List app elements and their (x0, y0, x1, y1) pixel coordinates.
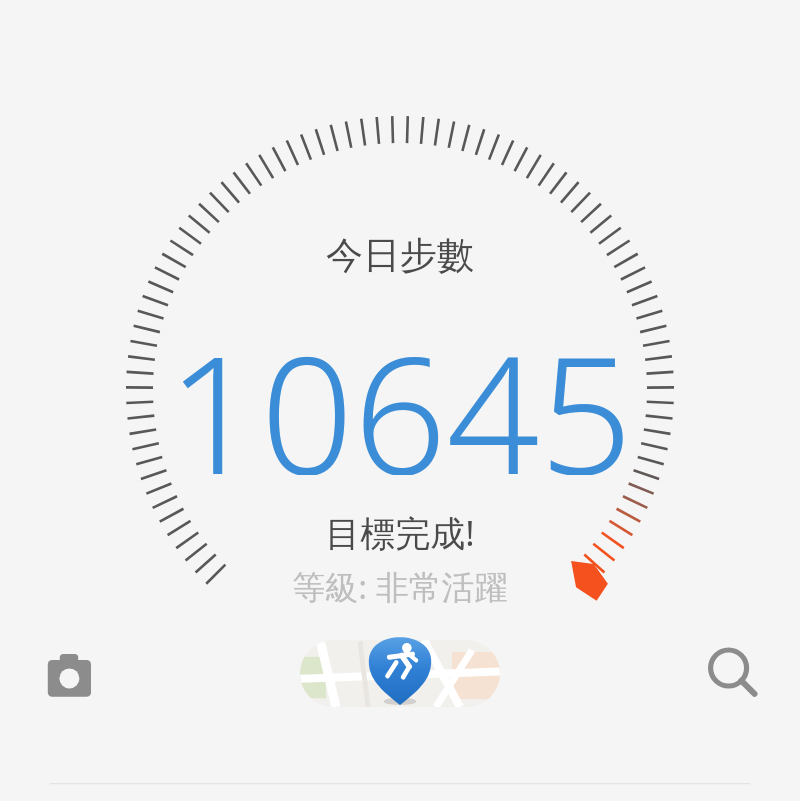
button[interactable]: Search (693, 636, 773, 716)
staticText: 目標完成! (0, 509, 800, 555)
button[interactable]: Camera (29, 636, 109, 716)
staticText: 等級: 非常活躍 (0, 564, 800, 608)
button[interactable]: Route map (300, 640, 500, 707)
staticText: 10645 (0, 300, 800, 475)
staticText: 今日步數 (0, 232, 800, 280)
